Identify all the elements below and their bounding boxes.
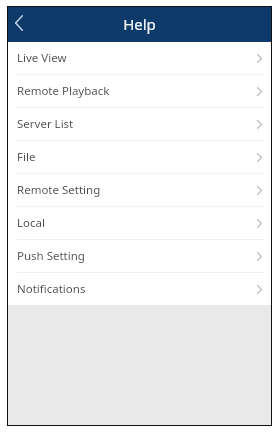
button[interactable]: Remote Playback [8, 75, 271, 107]
staticText: Help [123, 14, 156, 34]
staticText: Local [17, 215, 45, 231]
button[interactable]: Live View [8, 42, 271, 74]
staticText: Remote Playback [17, 83, 110, 99]
button[interactable]: Local [8, 207, 271, 239]
button[interactable]: Push Setting [8, 240, 271, 272]
staticText: File [17, 149, 36, 165]
staticText: Remote Setting [17, 182, 101, 198]
staticText: Notifications [17, 281, 86, 297]
staticText: Live View [17, 50, 67, 66]
button[interactable]: File [8, 141, 271, 173]
button[interactable]: Notifications [8, 273, 271, 305]
staticText: Server List [17, 116, 74, 132]
button[interactable]: Remote Setting [8, 174, 271, 206]
staticText: Push Setting [17, 248, 85, 264]
button[interactable]: Server List [8, 108, 271, 140]
button[interactable]: Back [8, 9, 30, 37]
